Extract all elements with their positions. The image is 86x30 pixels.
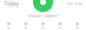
staticText: Add	[75, 1, 82, 6]
staticText: Tab	[7, 26, 11, 30]
staticText: Tab	[41, 26, 45, 30]
staticText	[73, 1, 75, 6]
staticText: Tab	[58, 26, 62, 30]
staticText: Balance updated	[29, 13, 57, 18]
staticText: Tab	[24, 26, 28, 30]
staticText: Today	[4, 0, 19, 7]
staticText: Tab	[75, 26, 79, 30]
staticText: Edit	[67, 1, 73, 6]
